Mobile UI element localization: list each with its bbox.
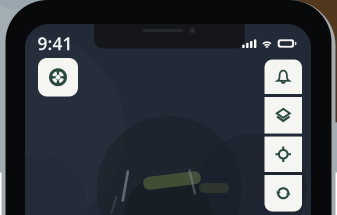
staticText: 9:41 xyxy=(37,32,72,55)
button[interactable]: Explore xyxy=(38,58,78,96)
button[interactable]: Map layers xyxy=(264,97,302,133)
button[interactable]: Alerts xyxy=(264,59,302,94)
button[interactable]: Locate me xyxy=(264,136,302,172)
button[interactable]: Refresh xyxy=(264,175,302,211)
